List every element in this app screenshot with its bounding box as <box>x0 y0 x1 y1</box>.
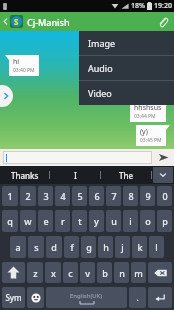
button[interactable]: m <box>131 262 146 283</box>
button[interactable]: . <box>129 287 146 308</box>
button[interactable]: Backspace <box>148 262 172 283</box>
button[interactable]: Emoji <box>27 287 44 308</box>
button[interactable]: k <box>132 236 147 258</box>
button[interactable]: r <box>55 210 70 232</box>
button[interactable]: l <box>149 236 164 258</box>
staticText: 03:45 PM <box>140 137 162 144</box>
staticText: h <box>103 241 109 253</box>
button[interactable]: 5 <box>72 186 87 206</box>
button[interactable]: v <box>80 262 95 283</box>
staticText: z <box>33 267 38 279</box>
button[interactable]: e <box>38 210 53 232</box>
button[interactable]: Send <box>152 149 174 166</box>
staticText: d <box>51 241 57 253</box>
button[interactable]: i <box>123 210 138 232</box>
staticText: b <box>102 267 108 279</box>
staticText: I <box>74 170 77 181</box>
staticText: 8 <box>128 190 134 202</box>
button[interactable]: s <box>28 236 44 258</box>
staticText: 9 <box>145 190 151 202</box>
button[interactable]: Enter <box>148 287 172 308</box>
staticText: 6 <box>94 190 100 202</box>
button[interactable]: j <box>115 236 130 258</box>
button[interactable]: a <box>10 236 26 258</box>
staticText: 4 <box>60 190 66 202</box>
staticText: f <box>70 241 74 253</box>
button[interactable]: The <box>101 166 151 184</box>
button[interactable]: 7 <box>106 186 121 206</box>
staticText: y <box>94 215 99 227</box>
button[interactable]: Next <box>0 85 13 107</box>
button[interactable]: b <box>97 262 112 283</box>
button[interactable]: o <box>140 210 155 232</box>
staticText: 03:40 PM <box>13 67 35 74</box>
staticText: 1 <box>7 190 13 202</box>
button[interactable]: 8 <box>123 186 138 206</box>
staticText: hi <box>13 57 20 67</box>
staticText: i <box>129 215 132 227</box>
button[interactable]: z <box>27 262 43 283</box>
staticText: v <box>85 267 90 279</box>
button[interactable]: 6 <box>89 186 104 206</box>
button[interactable]: 4 <box>55 186 70 206</box>
button[interactable]: n <box>114 262 129 283</box>
button[interactable]: h <box>98 236 113 258</box>
staticText: m <box>134 267 143 279</box>
staticText: n <box>119 267 125 279</box>
staticText: 18% <box>131 1 145 11</box>
staticText: 3 <box>43 190 49 202</box>
button[interactable]: Sym <box>2 287 25 308</box>
button[interactable]: Expand suggestions <box>153 167 173 183</box>
staticText: Video <box>88 87 112 99</box>
staticText: Thanks <box>11 170 39 181</box>
staticText: English(UK) <box>70 292 103 300</box>
button[interactable]: d <box>46 236 62 258</box>
staticText: 0 <box>162 190 168 202</box>
button[interactable]: 0 <box>157 186 172 206</box>
staticText: x <box>51 267 56 279</box>
staticText: 2 <box>25 190 31 202</box>
button[interactable]: 9 <box>140 186 155 206</box>
button[interactable]: Audio <box>79 56 174 80</box>
button[interactable]: Cj-Manish <box>27 12 152 31</box>
button[interactable]: x <box>45 262 61 283</box>
staticText: (y) <box>140 127 148 137</box>
button[interactable]: Thanks <box>0 166 49 184</box>
button[interactable]: f <box>64 236 79 258</box>
button[interactable]: I <box>50 166 100 184</box>
staticText: Audio <box>88 62 113 74</box>
staticText: S <box>14 16 19 27</box>
button[interactable]: t <box>72 210 87 232</box>
staticText: k <box>137 241 143 253</box>
staticText: l <box>155 241 158 253</box>
button[interactable]: q <box>2 210 18 232</box>
button[interactable]: u <box>106 210 121 232</box>
button[interactable]: Attach <box>152 12 174 31</box>
staticText: u <box>111 215 117 227</box>
staticText: w <box>24 215 32 227</box>
button[interactable]: w <box>20 210 36 232</box>
button[interactable]: hhshsus <box>130 101 166 122</box>
button[interactable]: Space <box>46 287 127 308</box>
staticText: q <box>7 215 13 227</box>
button[interactable]: hi <box>9 55 39 76</box>
button[interactable]: 1 <box>2 186 18 206</box>
button[interactable]: 3 <box>38 186 53 206</box>
button[interactable]: y <box>89 210 104 232</box>
button[interactable]: Video <box>79 81 174 105</box>
button[interactable]: Image <box>79 31 174 55</box>
staticText: 19:20 <box>154 1 172 11</box>
button[interactable]: c <box>63 262 78 283</box>
button[interactable]: Back <box>0 12 10 31</box>
button[interactable]: Shift <box>2 262 25 283</box>
button[interactable]: 2 <box>20 186 36 206</box>
button[interactable]: g <box>81 236 96 258</box>
staticText: r <box>61 215 65 227</box>
staticText: o <box>145 215 151 227</box>
button[interactable]: (y) <box>136 125 166 146</box>
button[interactable] <box>3 151 152 164</box>
staticText: 5 <box>77 190 83 202</box>
staticText: Cj-Manish <box>27 16 70 28</box>
staticText: . <box>136 292 139 303</box>
button[interactable]: p <box>157 210 172 232</box>
